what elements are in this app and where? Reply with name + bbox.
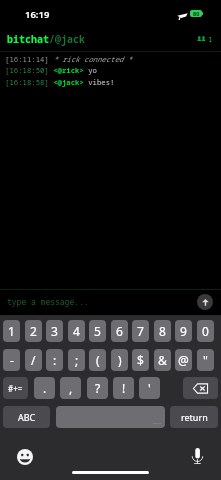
staticText: 80 [193, 10, 200, 17]
staticText: 4 [73, 323, 80, 339]
button[interactable]: 1 [3, 320, 20, 342]
staticText: 6 [116, 323, 123, 339]
staticText: : [53, 352, 57, 368]
staticText: 7 [137, 323, 144, 339]
staticText: . [43, 380, 47, 396]
button[interactable]: 7 [132, 320, 149, 342]
button[interactable]: : [46, 349, 63, 371]
button[interactable]: & [154, 349, 171, 371]
button[interactable]: ( [89, 349, 106, 371]
button[interactable]: 5 [89, 320, 106, 342]
staticText: @ [178, 352, 189, 368]
staticText: ( [96, 352, 100, 368]
staticText: 1 [8, 323, 15, 339]
button[interactable]: return [170, 406, 218, 428]
staticText: [16:11:14] * rick connected * [5, 54, 132, 64]
button[interactable]: Emoji keyboard [13, 445, 37, 469]
staticText: 2 [30, 323, 37, 339]
staticText: 16:19 [25, 8, 50, 21]
button[interactable]: 3 [46, 320, 63, 342]
button[interactable]: ? [87, 377, 108, 399]
staticText: return [181, 411, 208, 423]
staticText: - [10, 352, 14, 368]
button[interactable]: $ [132, 349, 149, 371]
staticText: 5 [94, 323, 101, 339]
staticText: " [203, 352, 208, 368]
button[interactable]: 8 [154, 320, 171, 342]
button[interactable]: " [197, 349, 214, 371]
button[interactable]: . [34, 377, 55, 399]
button[interactable]: @ [175, 349, 192, 371]
staticText: $ [137, 352, 144, 368]
button[interactable]: / [25, 349, 42, 371]
staticText: ' [148, 380, 151, 396]
staticText: 8 [159, 323, 166, 339]
staticText: ! [122, 380, 126, 396]
button[interactable]: Backspace [183, 377, 218, 399]
button[interactable]: , [60, 377, 81, 399]
button[interactable]: Dictation [185, 444, 209, 468]
button[interactable]: ; [68, 349, 85, 371]
button[interactable]: ABC [3, 406, 50, 428]
staticText: type a message... [7, 296, 89, 307]
button[interactable] [56, 406, 165, 428]
staticText: 1 [208, 34, 213, 44]
button[interactable]: bitchat/@jack [6, 31, 86, 47]
staticText: #+= [8, 383, 23, 394]
button[interactable]: 2 [25, 320, 42, 342]
button[interactable]: 6 [111, 320, 128, 342]
staticText: ? [95, 380, 101, 396]
staticText: ; [75, 352, 79, 368]
button[interactable]: Send [197, 294, 213, 310]
button[interactable]: ! [113, 377, 134, 399]
button[interactable]: #+= [3, 377, 28, 399]
staticText: 0 [202, 323, 209, 339]
staticText: 3 [51, 323, 58, 339]
button[interactable]: 4 [68, 320, 85, 342]
staticText: [16:18:50] <@rick> yo [5, 65, 97, 75]
staticText: ABC [18, 411, 36, 423]
staticText: , [69, 380, 73, 396]
button[interactable]: - [3, 349, 20, 371]
staticText: [16:18:58] <@jack> vibes! [5, 77, 115, 87]
staticText: / [31, 352, 36, 368]
button[interactable]: ) [111, 349, 128, 371]
button[interactable]: 9 [175, 320, 192, 342]
button[interactable]: ' [139, 377, 160, 399]
staticText: bitchat/@jack [7, 32, 85, 46]
staticText: & [158, 352, 167, 368]
staticText: 9 [180, 323, 187, 339]
staticText: ) [118, 352, 122, 368]
button[interactable]: Show people [194, 33, 208, 45]
button[interactable]: 0 [197, 320, 214, 342]
